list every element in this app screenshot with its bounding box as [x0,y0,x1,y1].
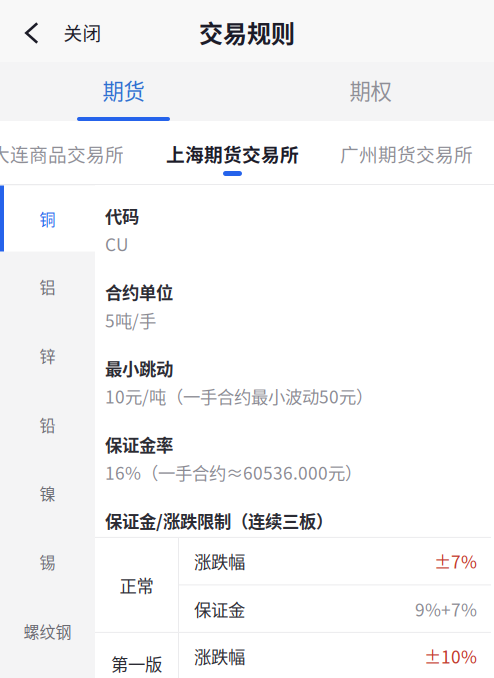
button[interactable]: 期货 [0,62,247,121]
staticText: 涨跌幅 [194,643,245,668]
staticText: 正常 [119,572,153,597]
staticText: 保证金 [194,596,245,621]
staticText: 10元/吨（一手合约最小波动50元） [105,383,373,409]
button[interactable]: 大连商品交易所 [0,121,124,184]
staticText: 最小跳动 [105,355,173,380]
button[interactable]: 广州期货交易所 [340,121,473,184]
staticText: 保证金/涨跌限制（连续三板） [105,508,333,533]
button[interactable]: 上海期货交易所 [166,121,299,184]
button[interactable]: 镍 [0,459,95,527]
staticText: CU [105,231,128,256]
staticText: 关闭 [63,18,101,45]
button[interactable]: 铜 [0,185,95,252]
button[interactable]: 期权 [247,62,494,121]
staticText: ±10% [424,643,477,668]
button[interactable]: 锌 [0,321,95,390]
button[interactable]: 铅 [0,390,95,459]
staticText: 锡 [39,550,55,573]
staticText: 9%+7% [415,596,477,621]
staticText: 锌 [39,344,55,367]
staticText: 上海期货交易所 [166,140,299,167]
staticText: 交易规则 [199,15,295,49]
staticText: ±7% [434,548,477,573]
staticText: 螺纹钢 [23,619,71,643]
staticText: 合约单位 [105,279,173,304]
button[interactable]: 关闭 [0,0,117,62]
button[interactable]: 铝 [0,252,95,321]
staticText: 期权 [349,74,391,105]
staticText: 第一版 [111,651,162,676]
button[interactable]: 螺纹钢 [0,596,95,666]
staticText: 铝 [39,275,55,298]
staticText: 大连商品交易所 [0,140,124,167]
staticText: 涨跌幅 [194,548,245,573]
staticText: 期货 [102,74,144,105]
button[interactable]: 锡 [0,527,95,596]
staticText: 保证金率 [105,432,173,457]
staticText: 铜 [39,207,55,230]
staticText: 广州期货交易所 [340,140,473,167]
staticText: 镍 [39,481,55,505]
staticText: 16%（一手合约≈60536.000元） [105,460,362,485]
staticText: 铅 [39,413,55,436]
staticText: 代码 [105,203,139,228]
staticText: 5吨/手 [105,307,156,332]
